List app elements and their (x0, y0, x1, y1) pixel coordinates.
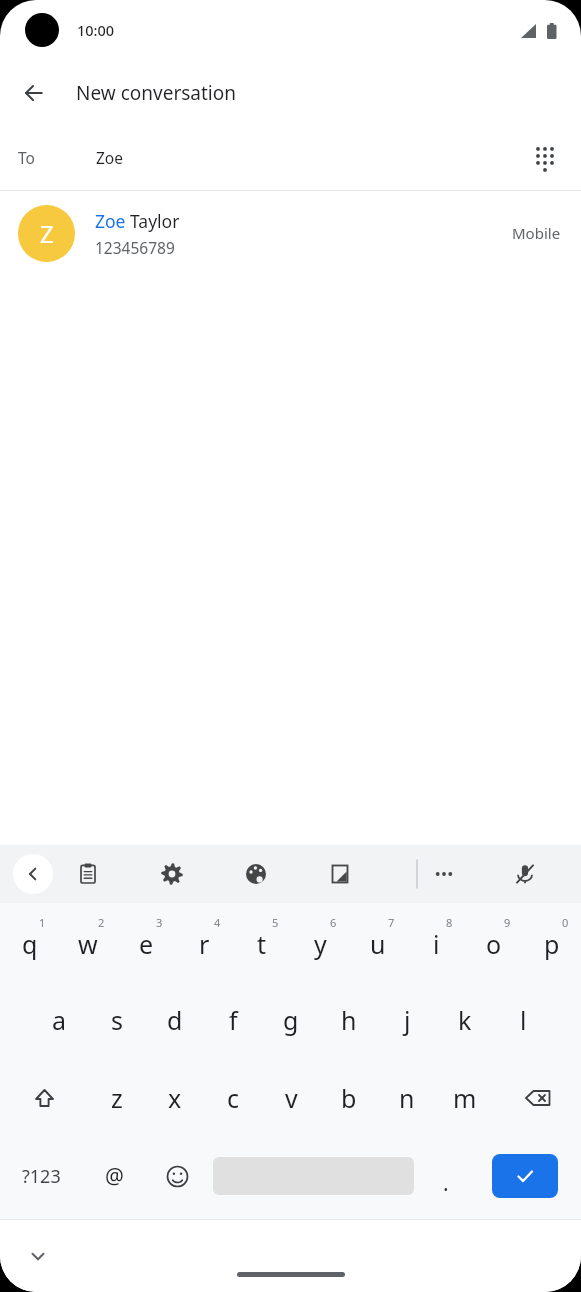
button[interactable]: . (418, 1137, 473, 1215)
button[interactable]: z (88, 1059, 146, 1137)
staticText: f (229, 1003, 238, 1037)
button[interactable]: h (320, 981, 378, 1059)
staticText: k (458, 1003, 472, 1037)
staticText: y (314, 927, 327, 961)
button[interactable]: a (30, 981, 88, 1059)
button[interactable]: r (175, 903, 233, 981)
staticText: 8 (446, 915, 453, 930)
staticText: b (341, 1081, 357, 1115)
staticText: 6 (330, 915, 337, 930)
staticText: a (52, 1003, 67, 1037)
staticText: . (443, 1169, 449, 1198)
button[interactable]: t (233, 903, 291, 981)
button[interactable]: @ (83, 1137, 146, 1215)
staticText: g (283, 1003, 299, 1037)
staticText: ?123 (22, 1164, 61, 1189)
staticText: 4 (214, 915, 221, 930)
button[interactable]: Z (0, 191, 581, 275)
button[interactable]: Clipboard (64, 850, 112, 898)
button[interactable]: d (146, 981, 204, 1059)
button[interactable]: j (378, 981, 436, 1059)
button[interactable]: q (0, 903, 59, 981)
staticText: 1 (39, 915, 46, 930)
button[interactable]: k (436, 981, 494, 1059)
button[interactable]: l (494, 981, 552, 1059)
staticText: @ (105, 1162, 124, 1191)
button[interactable]: Settings (148, 850, 196, 898)
button[interactable]: f (204, 981, 262, 1059)
staticText: Zoe Taylor (95, 209, 180, 233)
staticText: m (453, 1081, 477, 1115)
button[interactable]: Hide keyboard (16, 1234, 60, 1278)
staticText: 0 (562, 915, 569, 930)
staticText: Z (40, 217, 54, 250)
button[interactable]: o (465, 903, 523, 981)
button[interactable]: p (523, 903, 581, 981)
staticText: Mobile (512, 223, 561, 243)
button[interactable]: ?123 (0, 1137, 83, 1215)
button[interactable]: s (88, 981, 146, 1059)
button[interactable]: Theme (232, 850, 280, 898)
staticText: s (111, 1003, 123, 1037)
staticText: o (486, 927, 502, 961)
staticText: j (404, 1003, 411, 1037)
staticText: 10:00 (77, 20, 115, 40)
button[interactable]: m (436, 1059, 494, 1137)
staticText: t (257, 927, 267, 961)
staticText: 3 (156, 915, 163, 930)
staticText: To (18, 147, 35, 168)
button[interactable]: g (262, 981, 320, 1059)
staticText: p (544, 927, 560, 961)
staticText: l (520, 1003, 527, 1037)
staticText: z (111, 1081, 123, 1115)
staticText: 7 (388, 915, 395, 930)
staticText: q (22, 927, 38, 961)
button[interactable]: Shift (0, 1059, 88, 1137)
button[interactable]: y (291, 903, 349, 981)
staticText: i (433, 927, 440, 961)
staticText: w (78, 927, 98, 961)
button[interactable]: x (146, 1059, 204, 1137)
button[interactable]: w (59, 903, 117, 981)
staticText: 9 (504, 915, 511, 930)
staticText: d (167, 1003, 183, 1037)
staticText: v (285, 1081, 298, 1115)
button[interactable]: Voice input off (501, 850, 549, 898)
staticText: New conversation (76, 80, 236, 106)
button[interactable]: v (262, 1059, 320, 1137)
button[interactable]: c (204, 1059, 262, 1137)
button[interactable]: Dialpad (521, 133, 569, 181)
button[interactable]: e (117, 903, 175, 981)
button[interactable]: Done (473, 1137, 577, 1215)
staticText: n (399, 1081, 415, 1115)
button[interactable]: Backspace (494, 1059, 581, 1137)
button[interactable]: Back (10, 69, 58, 117)
button[interactable]: n (378, 1059, 436, 1137)
staticText: x (168, 1081, 182, 1115)
staticText: Zoe (96, 147, 123, 168)
button[interactable]: Resize keyboard (316, 850, 364, 898)
staticText: e (139, 927, 154, 961)
button[interactable]: u (349, 903, 407, 981)
staticText: 2 (98, 915, 105, 930)
staticText: h (341, 1003, 357, 1037)
button[interactable]: Expand toolbar (13, 854, 53, 894)
staticText: r (199, 927, 210, 961)
staticText: 123456789 (95, 237, 175, 258)
button[interactable]: Space (213, 1137, 414, 1215)
button[interactable]: i (407, 903, 465, 981)
staticText: u (370, 927, 386, 961)
button[interactable]: b (320, 1059, 378, 1137)
staticText: c (227, 1081, 240, 1115)
button[interactable]: Emoji (146, 1137, 209, 1215)
button[interactable]: More options (420, 850, 468, 898)
staticText: 5 (272, 915, 279, 930)
